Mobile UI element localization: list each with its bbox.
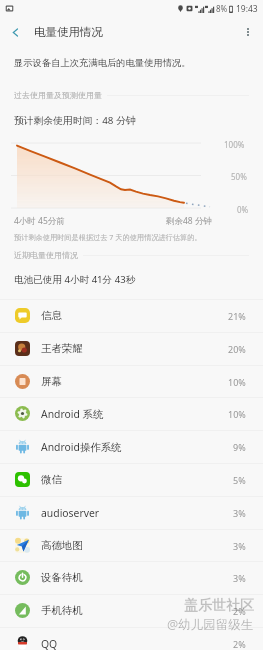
button[interactable]: 信息 xyxy=(0,299,263,332)
staticText: 手机待机 xyxy=(41,604,83,617)
button[interactable]: Back xyxy=(0,17,30,47)
staticText: 4小时 45分前 xyxy=(14,215,65,227)
button[interactable]: audioserver xyxy=(0,496,263,529)
staticText: audioserver xyxy=(41,506,100,520)
button[interactable]: QQ xyxy=(0,627,263,650)
staticText: 预计剩余使用时间：48 分钟 xyxy=(14,114,136,127)
staticText: Android操作系统 xyxy=(41,440,122,454)
staticText: 电池已使用 4小时 41分 43秒 xyxy=(14,273,136,286)
staticText: 预计剩余使用时间是根据过去 7 天的使用情况进行估算的。 xyxy=(14,232,202,242)
staticText: 2% xyxy=(233,605,246,617)
staticText: 21% xyxy=(228,310,246,322)
staticText: 高德地图 xyxy=(41,539,83,552)
button[interactable]: Android操作系统 xyxy=(0,430,263,463)
staticText: 2% xyxy=(233,638,246,650)
staticText: @幼儿园留级生 xyxy=(167,616,254,633)
staticText: QQ xyxy=(41,637,58,650)
staticText: 8% xyxy=(216,3,228,14)
button[interactable]: 屏幕 xyxy=(0,365,263,398)
button[interactable]: 王者荣耀 xyxy=(0,332,263,365)
staticText: 屏幕 xyxy=(41,375,62,388)
staticText: 设备待机 xyxy=(41,571,83,584)
staticText: 19:43 xyxy=(236,3,258,15)
staticText: 3% xyxy=(233,540,246,552)
staticText: 10% xyxy=(228,408,246,420)
staticText: 3% xyxy=(233,507,246,519)
staticText: 10% xyxy=(228,376,246,388)
staticText: 剩余48 分钟 xyxy=(166,215,212,227)
staticText: 电量使用情况 xyxy=(34,25,103,39)
button[interactable]: More options xyxy=(233,17,263,47)
button[interactable]: 设备待机 xyxy=(0,561,263,594)
staticText: 5% xyxy=(233,474,246,486)
staticText: 0% xyxy=(237,204,249,215)
staticText: 100% xyxy=(224,139,245,150)
staticText: 近期电量使用情况 xyxy=(14,250,78,260)
staticText: 50% xyxy=(231,171,247,182)
staticText: 王者荣耀 xyxy=(41,342,83,355)
staticText: 过去使用量及预测使用量 xyxy=(14,90,102,100)
button[interactable]: Android 系统 xyxy=(0,397,263,430)
button[interactable]: 微信 xyxy=(0,463,263,496)
button[interactable]: 手机待机 xyxy=(0,594,263,627)
staticText: 3% xyxy=(233,572,246,584)
staticText: 盖乐世社区 xyxy=(184,597,254,615)
staticText: Android 系统 xyxy=(41,407,104,421)
staticText: 20% xyxy=(228,343,246,355)
button[interactable]: 高德地图 xyxy=(0,529,263,562)
staticText: 显示设备自上次充满电后的电量使用情况。 xyxy=(14,57,191,69)
staticText: 信息 xyxy=(41,309,62,322)
staticText: 9% xyxy=(233,441,246,453)
staticText: 微信 xyxy=(41,473,62,486)
